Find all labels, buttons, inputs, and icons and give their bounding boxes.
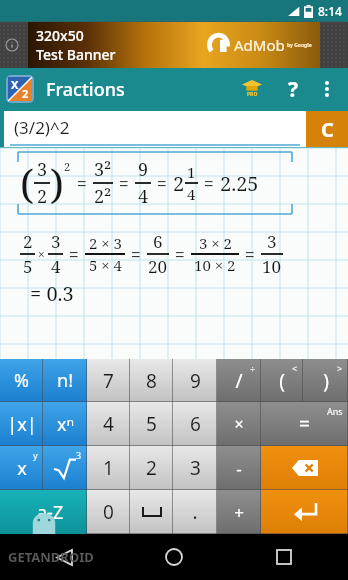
staticText: 4 bbox=[51, 255, 61, 278]
staticText: 3² bbox=[94, 157, 112, 182]
staticText: ( bbox=[20, 156, 34, 210]
button[interactable]: . bbox=[173, 490, 217, 534]
button[interactable]: ( bbox=[261, 359, 303, 402]
staticText: 2 bbox=[146, 455, 157, 481]
staticText: > bbox=[337, 362, 343, 374]
staticText: xⁿ bbox=[57, 412, 74, 437]
button[interactable]: n! bbox=[43, 359, 87, 402]
button[interactable]: 9 bbox=[173, 359, 217, 402]
button[interactable]: ) bbox=[303, 359, 348, 402]
staticText: 2 bbox=[173, 170, 185, 197]
button[interactable]: 0 bbox=[87, 490, 130, 534]
staticText: 2 bbox=[64, 159, 71, 174]
button[interactable]: Backspace bbox=[261, 446, 348, 490]
button[interactable]: 8 bbox=[130, 359, 173, 402]
staticText: 320x50 bbox=[36, 26, 84, 45]
staticText: 2.25 bbox=[220, 170, 259, 197]
staticText: + bbox=[234, 501, 244, 524]
button[interactable]: (3/2)^2 bbox=[4, 111, 306, 147]
staticText: = bbox=[72, 171, 92, 196]
staticText: 5 × 4 bbox=[89, 255, 122, 275]
staticText: |x| bbox=[7, 412, 37, 437]
staticText: 3 bbox=[76, 449, 82, 461]
button[interactable]: % bbox=[0, 359, 43, 402]
staticText: ( bbox=[279, 368, 285, 394]
staticText: 3 bbox=[190, 455, 201, 481]
button[interactable]: Home bbox=[154, 537, 194, 577]
button[interactable]: + bbox=[217, 490, 261, 534]
staticText: 5 bbox=[23, 255, 33, 278]
button[interactable]: xⁿ bbox=[43, 402, 87, 446]
button[interactable]: 7 bbox=[87, 359, 130, 402]
button[interactable]: 6 bbox=[173, 402, 217, 446]
staticText: = bbox=[126, 242, 146, 267]
staticText: ) bbox=[50, 156, 64, 210]
button[interactable]: More options bbox=[312, 74, 342, 104]
button[interactable]: = bbox=[261, 402, 348, 446]
staticText: 10 × 2 bbox=[194, 255, 236, 275]
staticText: 2 × 3 bbox=[89, 233, 122, 253]
staticText: 2 bbox=[22, 86, 29, 101]
button[interactable]: a-Z bbox=[0, 490, 87, 534]
staticText: Ans bbox=[327, 405, 343, 417]
staticText: 3 × 2 bbox=[199, 233, 232, 253]
staticText: = 0.3 bbox=[30, 280, 74, 307]
staticText: = bbox=[240, 242, 260, 267]
staticText: by Google bbox=[287, 42, 312, 49]
button[interactable]: C bbox=[306, 111, 348, 147]
staticText: 6 bbox=[190, 411, 201, 437]
staticText: 3 bbox=[51, 230, 61, 253]
staticText: C bbox=[321, 116, 334, 143]
staticText: = bbox=[199, 171, 219, 196]
staticText: x bbox=[17, 456, 27, 481]
button[interactable]: x bbox=[0, 446, 43, 490]
staticText: ) bbox=[323, 368, 329, 394]
button[interactable]: Pro version bbox=[234, 71, 270, 107]
staticText: n! bbox=[57, 368, 73, 393]
staticText: 1 bbox=[103, 455, 114, 481]
staticText: ? bbox=[288, 75, 299, 104]
staticText: PRO bbox=[247, 91, 258, 98]
staticText: 20 bbox=[148, 255, 168, 278]
staticText: 6 bbox=[153, 230, 163, 253]
staticText: 2² bbox=[94, 184, 112, 209]
staticText: Test Banner bbox=[36, 45, 116, 64]
staticText: 5 bbox=[146, 411, 157, 437]
button[interactable]: Back bbox=[44, 537, 84, 577]
staticText: 2 bbox=[37, 184, 48, 209]
button[interactable]: 2 bbox=[130, 446, 173, 490]
button[interactable]: Space bbox=[130, 490, 173, 534]
button[interactable]: × bbox=[217, 402, 261, 446]
staticText: × bbox=[35, 246, 48, 262]
staticText: ÷ bbox=[250, 362, 256, 374]
button[interactable]: - bbox=[217, 446, 261, 490]
staticText: a-Z bbox=[37, 500, 64, 525]
button[interactable]: Enter bbox=[261, 490, 348, 534]
staticText: 4 bbox=[103, 411, 114, 437]
staticText: = bbox=[299, 411, 310, 437]
staticText: / bbox=[235, 368, 243, 394]
staticText: 4 bbox=[187, 184, 196, 204]
staticText: 1 bbox=[187, 162, 196, 182]
button[interactable]: 4 bbox=[87, 402, 130, 446]
staticText: 4 bbox=[138, 184, 149, 209]
button[interactable]: 3 bbox=[173, 446, 217, 490]
staticText: = bbox=[152, 171, 172, 196]
staticText: < bbox=[292, 362, 298, 374]
button[interactable]: 5 bbox=[130, 402, 173, 446]
button[interactable]: 1 bbox=[87, 446, 130, 490]
button[interactable]: Help bbox=[276, 72, 310, 106]
staticText: X bbox=[11, 77, 19, 92]
staticText: 3 bbox=[267, 230, 277, 253]
staticText: 9 bbox=[138, 157, 149, 182]
button[interactable]: App icon bbox=[8, 77, 32, 101]
button[interactable]: |x| bbox=[0, 402, 43, 446]
staticText: 8:14 bbox=[318, 3, 342, 19]
staticText: × bbox=[234, 413, 244, 435]
staticText: 7 bbox=[103, 368, 114, 394]
button[interactable]: / bbox=[217, 359, 261, 402]
staticText: AdMob bbox=[234, 35, 285, 55]
button[interactable]: Cube root bbox=[43, 446, 87, 490]
button[interactable]: Recent apps bbox=[264, 537, 304, 577]
staticText: % bbox=[14, 368, 29, 393]
